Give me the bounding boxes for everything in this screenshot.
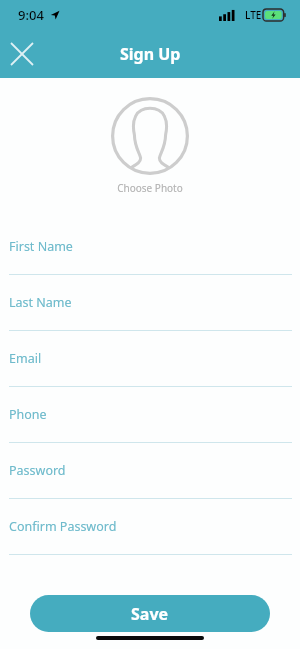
button[interactable]: Password (0, 443, 300, 499)
staticText: Last Name (9, 294, 72, 311)
staticText: Confirm Password (9, 518, 117, 535)
staticText: LTE (245, 8, 262, 22)
staticText: Password (9, 462, 66, 479)
button[interactable]: Choose Photo (111, 97, 189, 175)
staticText: First Name (9, 238, 73, 255)
staticText: Phone (9, 406, 47, 423)
button[interactable]: Email (0, 331, 300, 387)
staticText: Choose Photo (117, 181, 183, 195)
button[interactable]: First Name (0, 219, 300, 275)
button[interactable]: Confirm Password (0, 499, 300, 555)
staticText: Save (131, 603, 169, 625)
staticText: 9:04 (18, 6, 44, 24)
button[interactable]: Save (30, 595, 270, 632)
button[interactable]: Phone (0, 387, 300, 443)
button[interactable]: Last Name (0, 275, 300, 331)
button[interactable]: Close (0, 32, 44, 76)
staticText: Sign Up (120, 43, 181, 65)
staticText: Email (9, 350, 42, 367)
